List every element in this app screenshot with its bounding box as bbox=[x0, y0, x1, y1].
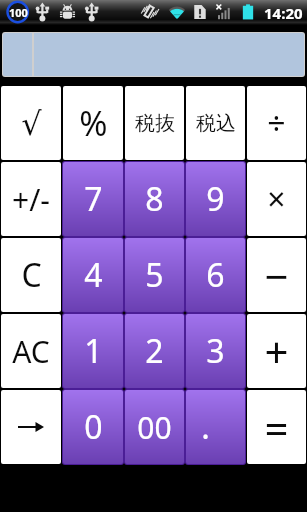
staticText: % bbox=[79, 100, 108, 146]
staticText: 7 bbox=[84, 177, 103, 221]
staticText: . bbox=[201, 405, 210, 449]
button[interactable]: √ bbox=[0, 85, 62, 161]
button[interactable]: 9 bbox=[185, 161, 246, 237]
button[interactable]: 1 bbox=[62, 313, 124, 389]
staticText: 14:20 bbox=[264, 3, 303, 23]
staticText: − bbox=[264, 247, 289, 304]
staticText: 5 bbox=[145, 253, 164, 297]
button[interactable]: Backspace bbox=[0, 389, 62, 465]
staticText: 0 bbox=[84, 405, 103, 449]
staticText: + bbox=[264, 323, 289, 380]
button[interactable]: − bbox=[246, 237, 307, 313]
button[interactable]: 税抜 bbox=[124, 85, 185, 161]
staticText: × bbox=[267, 177, 286, 221]
staticText: ÷ bbox=[267, 101, 286, 145]
button[interactable]: 6 bbox=[185, 237, 246, 313]
staticText: 1 bbox=[84, 329, 103, 373]
staticText: C bbox=[21, 253, 42, 297]
button[interactable]: 8 bbox=[124, 161, 185, 237]
button[interactable]: 2 bbox=[124, 313, 185, 389]
staticText: 8 bbox=[145, 177, 164, 221]
button[interactable]: ÷ bbox=[246, 85, 307, 161]
button[interactable]: AC bbox=[0, 313, 62, 389]
button[interactable]: . bbox=[185, 389, 246, 465]
button[interactable]: +/- bbox=[0, 161, 62, 237]
staticText: = bbox=[264, 399, 289, 456]
button[interactable]: 00 bbox=[124, 389, 185, 465]
staticText: 100 bbox=[9, 5, 28, 20]
staticText: 3 bbox=[206, 329, 225, 373]
button[interactable] bbox=[2, 32, 305, 77]
staticText: 2 bbox=[145, 329, 164, 373]
staticText: 00 bbox=[137, 407, 172, 448]
button[interactable]: % bbox=[62, 85, 124, 161]
staticText: 税抜 bbox=[135, 111, 175, 136]
button[interactable]: C bbox=[0, 237, 62, 313]
button[interactable]: 4 bbox=[62, 237, 124, 313]
staticText: +/- bbox=[12, 179, 50, 220]
button[interactable]: 5 bbox=[124, 237, 185, 313]
button[interactable]: 7 bbox=[62, 161, 124, 237]
staticText: 4 bbox=[84, 253, 103, 297]
staticText: AC bbox=[12, 331, 50, 372]
button[interactable]: 税込 bbox=[185, 85, 246, 161]
staticText: √ bbox=[21, 105, 42, 142]
button[interactable]: 3 bbox=[185, 313, 246, 389]
staticText: 税込 bbox=[196, 111, 236, 136]
staticText: 6 bbox=[206, 253, 225, 297]
button[interactable]: + bbox=[246, 313, 307, 389]
button[interactable]: = bbox=[246, 389, 307, 465]
button[interactable]: 0 bbox=[62, 389, 124, 465]
button[interactable]: × bbox=[246, 161, 307, 237]
staticText: 9 bbox=[206, 177, 225, 221]
